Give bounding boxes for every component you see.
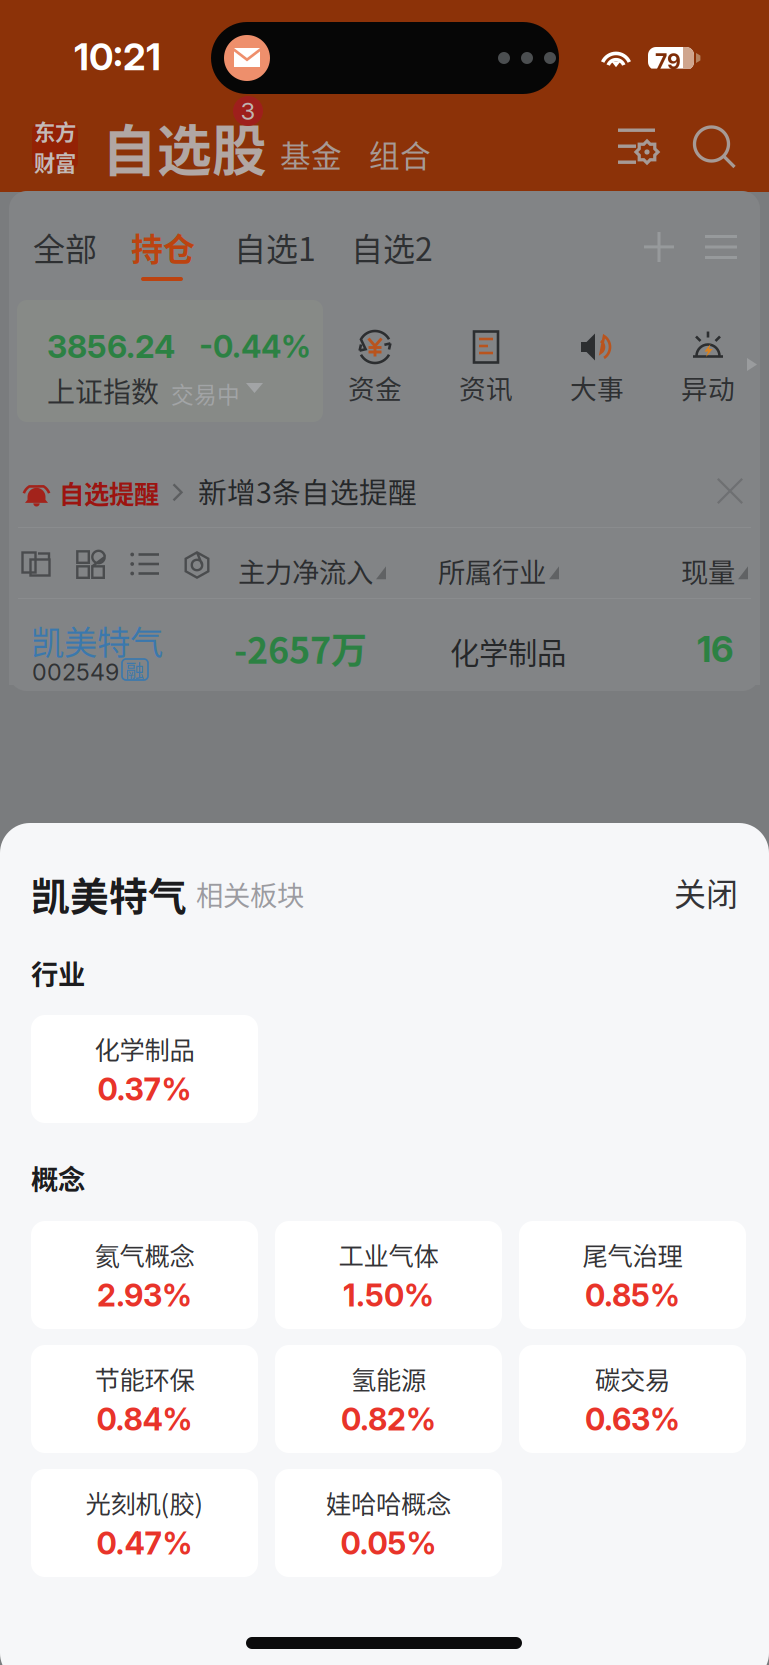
staticText: 财富 (34, 146, 76, 177)
button[interactable]: 碳交易 (519, 1345, 746, 1453)
staticText: 融 (125, 656, 144, 683)
staticText: -0.44% (199, 328, 311, 365)
staticText: 全部 (33, 224, 97, 270)
staticText: 化学制品 (94, 1030, 194, 1067)
button[interactable]: 氢能源 (275, 1345, 502, 1453)
button[interactable]: 自选股 (102, 107, 267, 186)
staticText: 0.47% (96, 1525, 192, 1562)
staticText: 自选提醒 (59, 474, 159, 511)
button[interactable]: 化学制品 (31, 1015, 258, 1123)
staticText: 凯美特气 (31, 616, 163, 664)
staticText: 0.84% (96, 1401, 192, 1438)
staticText: 氦气概念 (94, 1236, 194, 1273)
button[interactable]: List view (130, 553, 160, 576)
button[interactable]: Add watchlist (644, 232, 674, 262)
staticText: 16 (697, 627, 734, 671)
staticText: 尾气治理 (582, 1236, 682, 1273)
staticText: 大事 (570, 368, 624, 407)
staticText: 光刻机(胶) (85, 1484, 203, 1521)
button[interactable] (9, 600, 760, 685)
staticText: 0.05% (340, 1525, 436, 1562)
staticText: 主力净流入 (238, 551, 373, 591)
button[interactable]: Manage watchlists (705, 235, 737, 259)
staticText: 行业 (31, 953, 85, 993)
button[interactable]: 资金 (333, 328, 417, 407)
staticText: 化学制品 (450, 630, 566, 672)
staticText: 基金 (280, 132, 342, 176)
staticText: 002549 (32, 658, 119, 686)
staticText: 异动 (681, 368, 735, 407)
button[interactable]: 持仓 (131, 224, 195, 270)
button[interactable]: 资讯 (444, 328, 528, 407)
button[interactable]: Compare view (21, 551, 52, 578)
button[interactable]: 全部 (33, 224, 97, 270)
staticText: 所属行业 (438, 551, 546, 591)
staticText: 自选股 (102, 107, 267, 186)
button[interactable]: 自选1 (234, 224, 316, 270)
button[interactable]: 自选2 (351, 224, 433, 270)
staticText: 氢能源 (351, 1360, 426, 1397)
button[interactable]: Search (693, 125, 737, 171)
button[interactable]: 自选提醒 (22, 474, 184, 511)
staticText: 上证指数 (47, 370, 159, 410)
staticText: 1.50% (343, 1277, 434, 1314)
button[interactable]: 大事 (555, 328, 639, 407)
button[interactable]: Focus view (184, 551, 210, 579)
staticText: 碳交易 (595, 1360, 670, 1397)
button[interactable]: 所属行业 (438, 551, 559, 591)
button[interactable]: 工业气体 (275, 1221, 502, 1329)
staticText: 0.63% (585, 1401, 680, 1438)
staticText: 3856.24 (47, 327, 175, 366)
staticText: 资金 (348, 368, 402, 407)
staticText: 0.37% (97, 1071, 191, 1108)
staticText: 新增3条自选提醒 (198, 470, 417, 511)
button[interactable]: 关闭 (674, 869, 738, 915)
button[interactable]: 异动 (666, 328, 750, 407)
staticText: 自选1 (234, 224, 316, 270)
button[interactable]: 基金 (280, 132, 342, 176)
staticText: 交易中 (171, 377, 240, 410)
staticText: 现量 (681, 551, 735, 591)
button[interactable]: 娃哈哈概念 (275, 1469, 502, 1577)
button[interactable]: 光刻机(胶) (31, 1469, 258, 1577)
staticText: 相关板块 (196, 874, 304, 914)
button[interactable]: 节能环保 (31, 1345, 258, 1453)
button[interactable]: Grid view (76, 550, 106, 579)
staticText: 0.85% (585, 1277, 680, 1314)
staticText: 0.82% (341, 1401, 436, 1438)
button[interactable]: 主力净流入 (238, 551, 386, 591)
staticText: 资讯 (459, 368, 513, 407)
staticText: 自选2 (351, 224, 433, 270)
staticText: 娃哈哈概念 (326, 1484, 451, 1521)
button[interactable]: Dismiss alert (717, 478, 743, 504)
staticText: 10:21 (74, 34, 161, 79)
staticText: 关闭 (674, 869, 738, 915)
staticText: 组合 (369, 132, 431, 176)
staticText: 3 (240, 96, 255, 125)
staticText: 工业气体 (338, 1236, 438, 1273)
staticText: 2.93% (97, 1277, 192, 1314)
button[interactable]: 现量 (681, 551, 748, 591)
button[interactable]: Sort and filter (618, 127, 660, 165)
staticText: 凯美特气 (31, 866, 187, 922)
staticText: -2657万 (234, 622, 367, 674)
staticText: 节能环保 (94, 1360, 194, 1397)
staticText: 东方 (34, 116, 76, 146)
button[interactable]: 组合 (369, 132, 431, 176)
button[interactable]: 氦气概念 (31, 1221, 258, 1329)
button[interactable]: 尾气治理 (519, 1221, 746, 1329)
staticText: 持仓 (131, 224, 195, 270)
staticText: 概念 (31, 1158, 85, 1198)
staticText: 79 (655, 49, 681, 74)
